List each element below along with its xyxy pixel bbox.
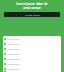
staticText: Lorem ipsu: [7, 57, 20, 60]
staticText: Lorem ipsu: [7, 47, 20, 50]
button[interactable]: Lorem ipsu: [3, 71, 61, 72]
button[interactable]: Lorem ipsu: [3, 66, 61, 71]
staticText: Lorem ipsu: [7, 67, 20, 70]
button[interactable]: Lorem ipsu: [3, 56, 61, 61]
staticText: Lorem ipsum dolor sit: [0, 2, 64, 6]
staticText: Lorem ipsum: [25, 13, 40, 16]
button[interactable]: Lorem ipsu: [3, 41, 61, 46]
button[interactable]: Lorem ipsu: [3, 46, 61, 51]
staticText: Lorem ipsu: [7, 52, 20, 55]
button[interactable]: Lorem ipsum: [4, 12, 60, 17]
staticText: Lorem ipsu: [7, 62, 20, 65]
button[interactable]: Lorem ipsu: [3, 61, 61, 66]
button[interactable]: Lorem ipsu: [3, 51, 61, 56]
staticText: Lorem ipsu: [7, 42, 20, 45]
staticText: Lorem ipsu: [7, 37, 20, 40]
staticText: amet consec: [0, 6, 64, 10]
button[interactable]: Lorem ipsu: [3, 36, 61, 41]
